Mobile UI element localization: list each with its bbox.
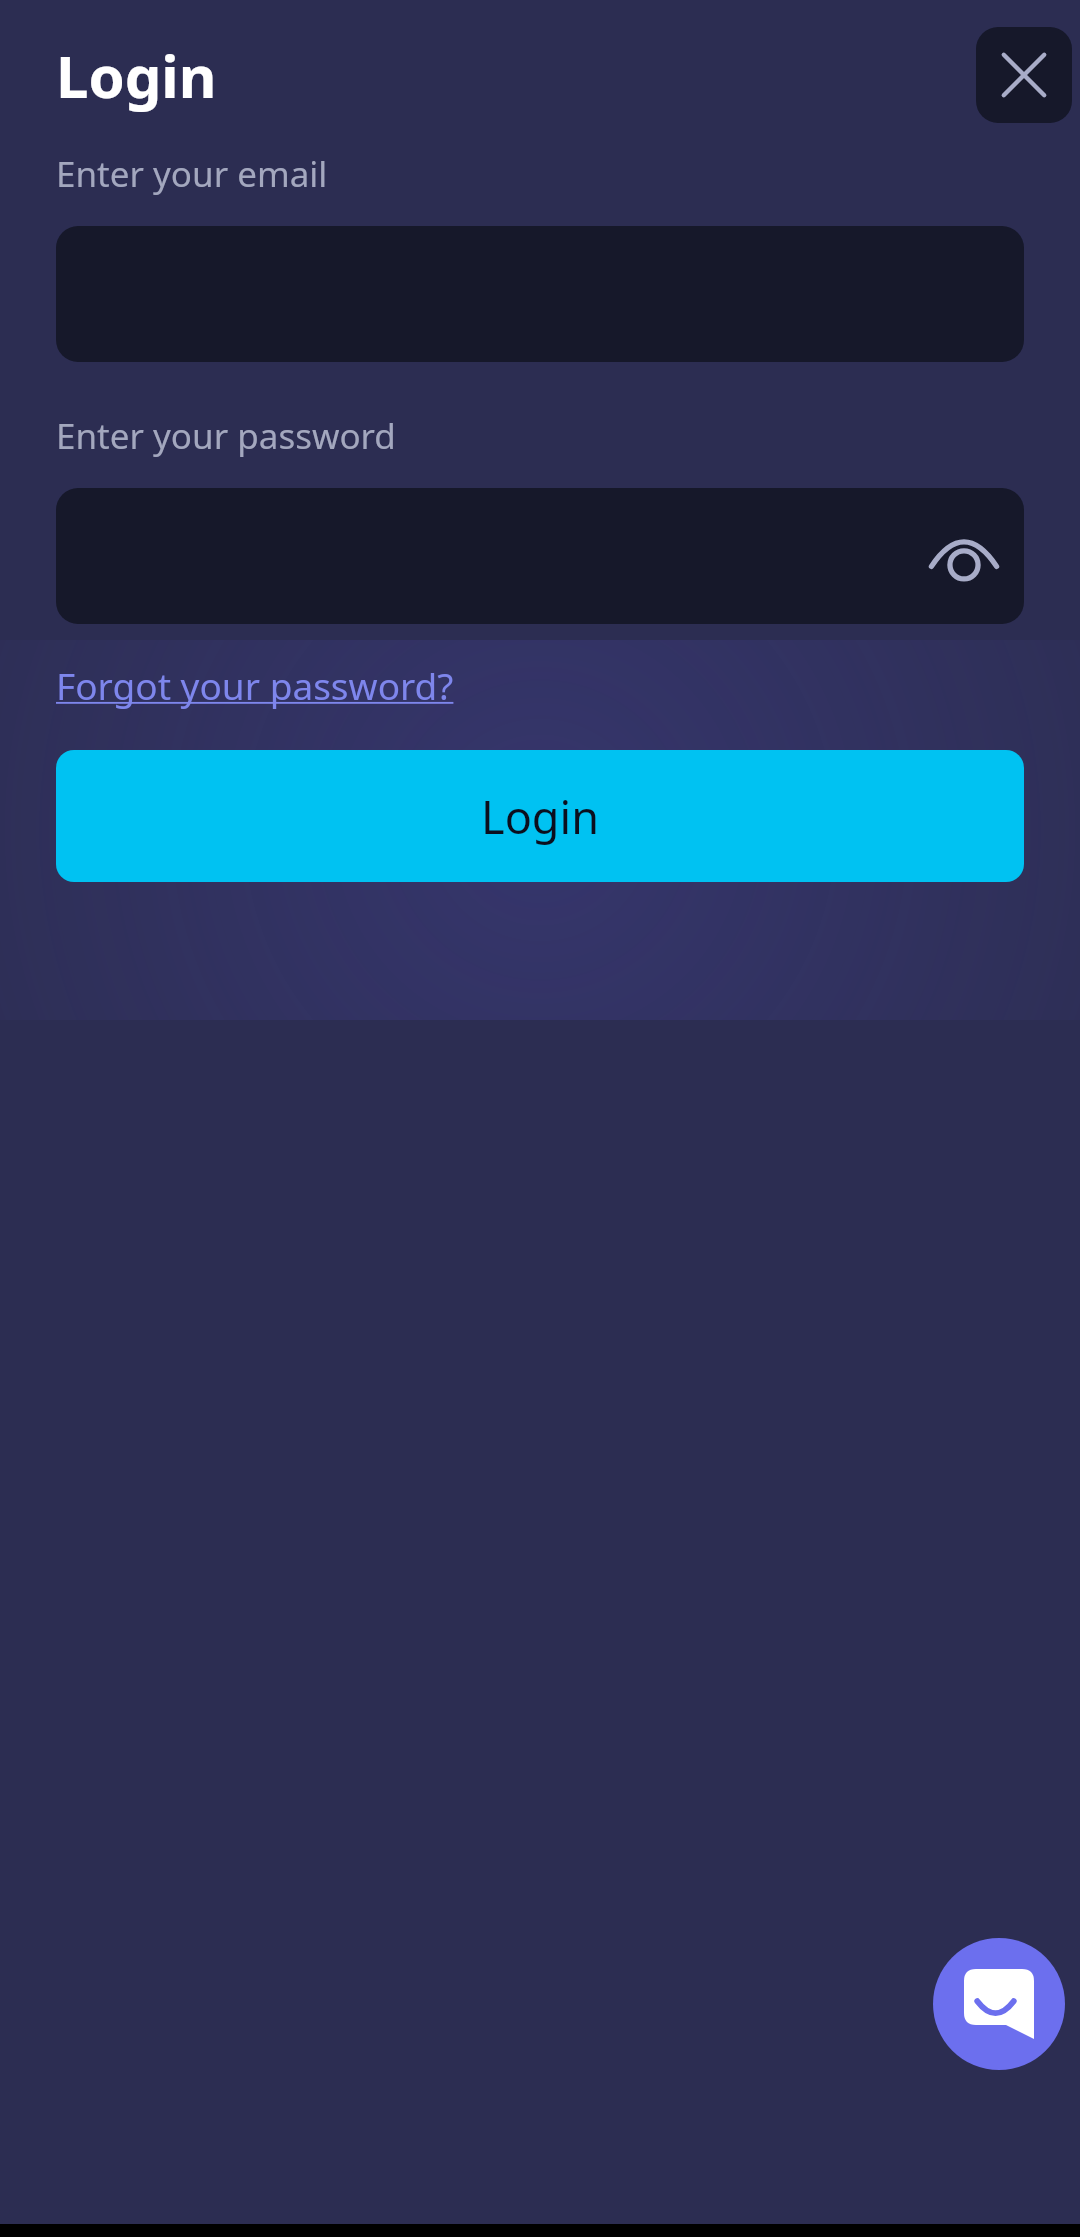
staticText: Forgot your password? [56,660,454,710]
staticText: Login [481,786,599,847]
staticText: Enter your password [56,412,396,460]
button[interactable]: Show password [918,510,1010,602]
button[interactable]: Login [56,750,1024,882]
staticText: Login [56,36,217,115]
button[interactable]: Close [976,27,1072,123]
button[interactable]: Open chat [933,1938,1065,2070]
button[interactable]: Show password [56,488,1024,624]
staticText: Enter your email [56,150,328,198]
button[interactable]: Forgot your password? [56,660,454,710]
